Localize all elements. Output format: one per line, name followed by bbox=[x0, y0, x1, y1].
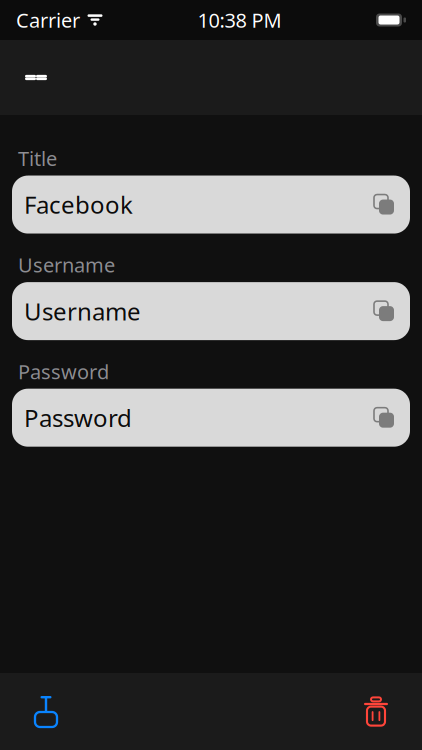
staticText: Carrier bbox=[16, 7, 80, 33]
staticText: Username bbox=[24, 295, 141, 327]
button[interactable]: Facebook bbox=[12, 176, 410, 234]
staticText: 10:38 PM bbox=[197, 7, 281, 33]
staticText: Password bbox=[18, 358, 109, 385]
staticText: Title bbox=[18, 145, 57, 172]
button[interactable]: Delete bbox=[350, 685, 402, 737]
button[interactable]: Username bbox=[12, 282, 410, 340]
button[interactable]: Share bbox=[20, 685, 72, 737]
staticText: Password bbox=[24, 402, 132, 434]
staticText: Username bbox=[18, 252, 115, 278]
button[interactable]: Close bbox=[14, 55, 58, 99]
staticText: Facebook bbox=[24, 189, 133, 220]
button[interactable]: Password bbox=[12, 389, 410, 447]
